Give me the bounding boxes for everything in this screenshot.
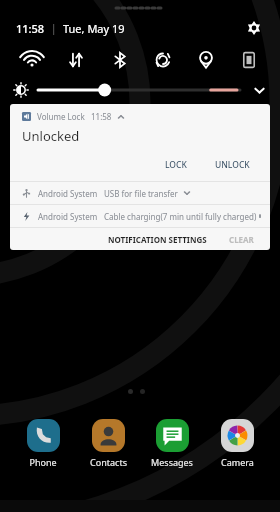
button[interactable]: NOTIFICATION SETTINGS xyxy=(102,231,213,248)
button[interactable]: Phone xyxy=(12,417,74,470)
button[interactable]: Battery xyxy=(227,46,270,74)
staticText: Android System xyxy=(38,188,98,199)
button[interactable]: Wi-Fi xyxy=(10,46,54,74)
staticText: Cable charging(7 min until fully charged… xyxy=(104,211,257,222)
button[interactable]: Messages xyxy=(141,417,203,470)
button[interactable]: Mobile data xyxy=(54,46,98,74)
staticText: USB for file transfer xyxy=(104,188,178,199)
staticText: | xyxy=(51,21,57,35)
staticText: 11:58 xyxy=(91,111,112,122)
button[interactable]: CLEAR xyxy=(223,231,260,248)
button[interactable]: Android System xyxy=(10,182,270,204)
staticText: Camera xyxy=(221,456,254,468)
staticText: LOCK xyxy=(165,159,187,171)
button[interactable]: LOCK xyxy=(157,155,195,175)
staticText: 11:58 xyxy=(16,21,45,36)
button[interactable]: Camera xyxy=(206,417,268,470)
button[interactable]: Contacts xyxy=(77,417,139,470)
button[interactable]: Location xyxy=(184,46,227,74)
staticText: Contacts xyxy=(90,456,127,468)
staticText: Messages xyxy=(151,456,193,468)
button[interactable]: UNLOCK xyxy=(207,155,258,175)
staticText: Unlocked xyxy=(22,127,80,145)
button[interactable]: Volume Lock xyxy=(10,104,270,181)
staticText: CLEAR xyxy=(229,234,254,245)
button[interactable]: Bluetooth xyxy=(98,46,141,74)
staticText: Android System xyxy=(38,211,98,222)
staticText: NOTIFICATION SETTINGS xyxy=(108,234,207,245)
button[interactable]: Expand quick settings xyxy=(248,79,270,101)
staticText: Phone xyxy=(29,456,57,468)
staticText: Tue, May 19 xyxy=(63,21,125,36)
button[interactable]: Android System xyxy=(10,205,270,227)
button[interactable]: Settings xyxy=(240,16,268,40)
button[interactable] xyxy=(38,80,240,100)
staticText: UNLOCK xyxy=(215,159,250,171)
staticText: Volume Lock xyxy=(37,111,85,122)
button[interactable]: Auto sync xyxy=(141,46,184,74)
